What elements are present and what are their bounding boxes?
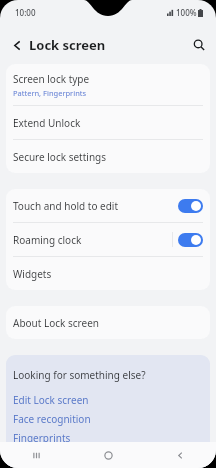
button[interactable]: Touch and hold to edit bbox=[6, 189, 210, 222]
button[interactable]: Roaming clock switch, on bbox=[178, 233, 203, 247]
staticText: Roaming clock bbox=[13, 233, 172, 247]
button[interactable]: Back bbox=[5, 33, 29, 57]
button[interactable]: Face recognition bbox=[13, 409, 203, 428]
staticText: About Lock screen bbox=[13, 316, 99, 330]
button[interactable]: Widgets bbox=[6, 257, 210, 290]
staticText: 100% bbox=[176, 7, 197, 18]
button[interactable]: Back bbox=[144, 442, 216, 468]
button[interactable]: Roaming clock bbox=[6, 223, 210, 256]
staticText: Screen lock type bbox=[13, 72, 90, 86]
button[interactable]: Hide content bbox=[13, 447, 203, 466]
button[interactable]: Home bbox=[72, 442, 144, 468]
staticText: Face recognition bbox=[13, 412, 91, 426]
button[interactable]: Touch and hold to edit switch, on bbox=[178, 199, 203, 213]
button[interactable]: Edit Lock screen bbox=[13, 390, 203, 409]
staticText: Secure lock settings bbox=[13, 150, 106, 164]
button[interactable]: Search bbox=[187, 33, 211, 57]
staticText: Extend Unlock bbox=[13, 116, 81, 130]
button[interactable]: Secure lock settings bbox=[6, 140, 210, 173]
staticText: Widgets bbox=[13, 267, 52, 281]
staticText: Fingerprints bbox=[13, 431, 71, 445]
button[interactable]: Extend Unlock bbox=[6, 106, 210, 139]
staticText: 10:00 bbox=[15, 7, 36, 18]
button[interactable]: Screen lock type bbox=[6, 64, 210, 105]
button[interactable]: Recent apps bbox=[0, 442, 72, 468]
staticText: Edit Lock screen bbox=[13, 393, 89, 407]
button[interactable]: About Lock screen bbox=[6, 306, 210, 339]
button[interactable]: Fingerprints bbox=[13, 428, 203, 447]
staticText: Lock screen bbox=[29, 36, 106, 54]
staticText: Pattern, Fingerprints bbox=[13, 88, 87, 98]
staticText: Touch and hold to edit bbox=[13, 199, 178, 213]
staticText: Looking for something else? bbox=[13, 368, 146, 382]
staticText: Hide content bbox=[13, 450, 74, 464]
